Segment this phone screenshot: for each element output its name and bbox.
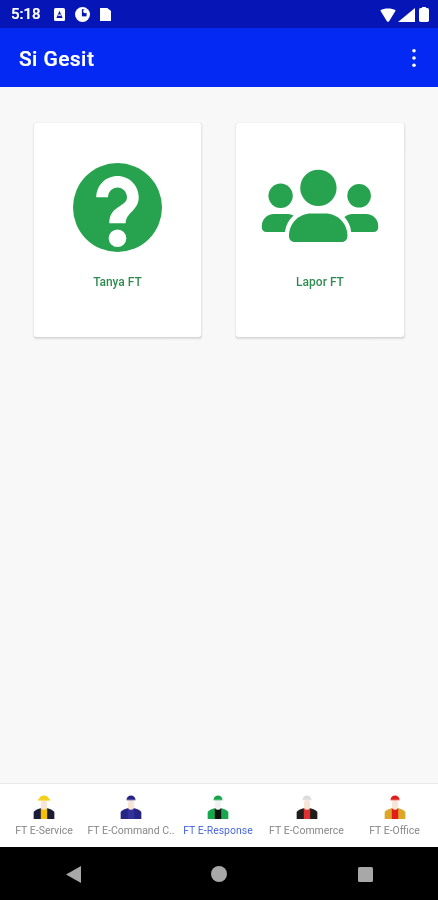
button[interactable]: Home: [197, 852, 241, 896]
button[interactable]: Recent apps: [343, 852, 387, 896]
button[interactable]: FT E-Service: [0, 784, 87, 847]
staticText: FT E-Commerce: [269, 824, 344, 836]
staticText: FT E-Service: [15, 824, 73, 836]
staticText: Lapor FT: [296, 275, 344, 289]
button[interactable]: FT E-Office: [350, 784, 438, 847]
button[interactable]: Tanya FT: [34, 123, 201, 337]
staticText: Si Gesit: [19, 47, 95, 72]
button[interactable]: FT E-Response: [174, 784, 262, 847]
staticText: Tanya FT: [93, 275, 142, 289]
button[interactable]: FT E-Command C..: [87, 784, 174, 847]
button[interactable]: FT E-Commerce: [262, 784, 350, 847]
staticText: 5:18: [11, 5, 41, 23]
button[interactable]: Lapor FT: [236, 123, 404, 337]
staticText: FT E-Response: [183, 824, 253, 836]
staticText: FT E-Command C..: [87, 824, 174, 836]
button[interactable]: More options: [390, 28, 438, 87]
button[interactable]: Back: [51, 852, 95, 896]
staticText: FT E-Office: [369, 824, 420, 836]
